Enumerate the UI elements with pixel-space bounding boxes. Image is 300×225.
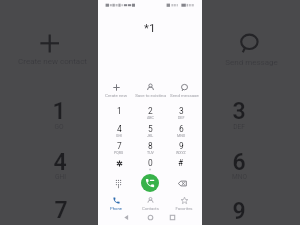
staticText: PQRS [114, 151, 124, 155]
staticText: 0 [148, 158, 153, 168]
button[interactable]: Home [145, 212, 156, 223]
button[interactable]: 5 [136, 122, 164, 138]
staticText: DEF [178, 116, 185, 120]
staticText: 4 [53, 149, 67, 176]
button[interactable]: # [167, 156, 195, 172]
button[interactable]: 4 [105, 122, 133, 138]
staticText: 9 [179, 141, 184, 151]
staticText: Create new contact [100, 93, 132, 97]
button[interactable]: 1 [105, 104, 133, 120]
staticText: Create new contact [18, 57, 87, 66]
button[interactable]: Favorites [168, 196, 200, 210]
staticText: WXYZ [176, 151, 186, 155]
staticText: 7 [117, 141, 122, 151]
staticText: ABC [147, 116, 154, 120]
staticText: MNO [177, 134, 186, 138]
staticText: 1 [52, 98, 66, 125]
button[interactable]: 0 [136, 156, 164, 172]
staticText: 3 [232, 98, 246, 125]
button[interactable]: 9 [167, 139, 195, 155]
button[interactable]: 6 [167, 122, 195, 138]
button[interactable]: Create new contact [100, 83, 132, 97]
button[interactable]: Save to existing [134, 83, 166, 97]
button[interactable]: Star [105, 156, 133, 172]
button[interactable]: Contacts [134, 196, 166, 210]
button[interactable]: Back [121, 212, 132, 223]
staticText: Favorites [175, 206, 193, 210]
staticText: 7 [54, 197, 68, 224]
button[interactable]: 2 [136, 104, 164, 120]
staticText: *1 [144, 21, 156, 34]
staticText: GO [54, 123, 64, 131]
staticText: 6 [232, 149, 246, 176]
staticText: Send message [225, 58, 278, 67]
button[interactable]: Backspace [173, 174, 191, 192]
staticText: Save to existing [135, 93, 166, 97]
staticText: Phone [110, 206, 122, 210]
staticText: 9 [232, 198, 246, 225]
staticText: 8 [148, 141, 153, 151]
staticText: # [178, 158, 184, 168]
button[interactable]: Send message [168, 83, 200, 97]
button[interactable]: 7 [105, 139, 133, 155]
staticText: 2 [148, 106, 153, 116]
button[interactable]: Call [141, 174, 159, 192]
staticText: MNO [232, 173, 247, 181]
button[interactable]: 3 [167, 104, 195, 120]
staticText: Contacts [142, 206, 159, 210]
staticText: 1 [117, 106, 122, 116]
staticText: 6 [179, 124, 184, 134]
staticText: TUV [147, 151, 154, 155]
staticText: JKL [147, 134, 154, 138]
staticText: GHI [116, 134, 122, 138]
staticText: 5 [148, 124, 153, 134]
button[interactable]: Phone [100, 196, 132, 210]
staticText: DEF [233, 123, 245, 131]
staticText: 3 [179, 106, 184, 116]
button[interactable]: 8 [136, 139, 164, 155]
staticText: + [149, 168, 152, 172]
staticText: Send message [170, 93, 199, 97]
staticText: GHI [55, 173, 66, 181]
staticText: 4 [117, 124, 122, 134]
button[interactable]: Recent apps [167, 212, 178, 223]
button[interactable]: Hide keypad [109, 174, 127, 192]
